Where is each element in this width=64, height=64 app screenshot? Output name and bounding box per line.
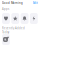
- staticText: Recently Added: [2, 26, 25, 30]
- button[interactable]: bolt.fill: [30, 13, 38, 24]
- staticText: Apps: [2, 7, 9, 11]
- button[interactable]: Edit: [33, 1, 38, 5]
- staticText: Good Morning: [2, 1, 23, 5]
- staticText: Edit: [33, 1, 38, 5]
- button[interactable]: bell.fill: [21, 13, 28, 24]
- button[interactable]: square.and.pencil: [2, 34, 10, 45]
- button[interactable]: star.fill: [11, 13, 19, 24]
- button[interactable]: heart.fill: [2, 13, 10, 24]
- staticText: Today: [2, 30, 9, 34]
